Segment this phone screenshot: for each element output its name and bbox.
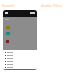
staticText: Audio Files [41,3,62,8]
staticText: Search [2,3,15,8]
